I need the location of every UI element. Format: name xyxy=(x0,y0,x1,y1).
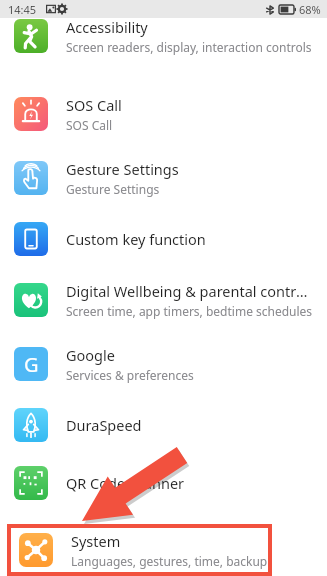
staticText: 14:45 xyxy=(8,2,37,17)
staticText: Screen readers, display, interaction con… xyxy=(66,39,312,55)
button[interactable]: QR Code Scanner xyxy=(0,454,327,512)
staticText: Services & preferences xyxy=(66,367,194,383)
button[interactable]: Custom key function xyxy=(0,210,327,268)
staticText: SOS Call xyxy=(66,117,113,133)
staticText: Accessibility xyxy=(66,17,148,37)
staticText: QR Code Scanner xyxy=(66,473,185,493)
staticText: System xyxy=(71,531,121,551)
staticText: Digital Wellbeing & parental controls xyxy=(66,281,313,301)
staticText: Custom key function xyxy=(66,229,206,249)
staticText: Languages, gestures, time, backup xyxy=(71,553,268,569)
staticText: 68% xyxy=(299,2,321,17)
staticText: Google xyxy=(66,345,115,365)
staticText: Gesture Settings xyxy=(66,181,160,197)
staticText: Screen time, app timers, bedtime schedul… xyxy=(66,303,313,319)
staticText: DuraSpeed xyxy=(66,415,142,435)
button[interactable]: SOS Call xyxy=(0,82,327,146)
staticText: SOS Call xyxy=(66,95,122,115)
staticText: Gesture Settings xyxy=(66,159,179,179)
button[interactable]: Gesture Settings xyxy=(0,146,327,210)
button[interactable]: Digital Wellbeing & parental controls xyxy=(0,268,327,332)
button[interactable]: DuraSpeed xyxy=(0,396,327,454)
staticText: G xyxy=(24,351,39,378)
button[interactable]: G xyxy=(0,332,327,396)
button[interactable]: Accessibility xyxy=(0,4,327,68)
button[interactable]: System xyxy=(11,528,268,572)
